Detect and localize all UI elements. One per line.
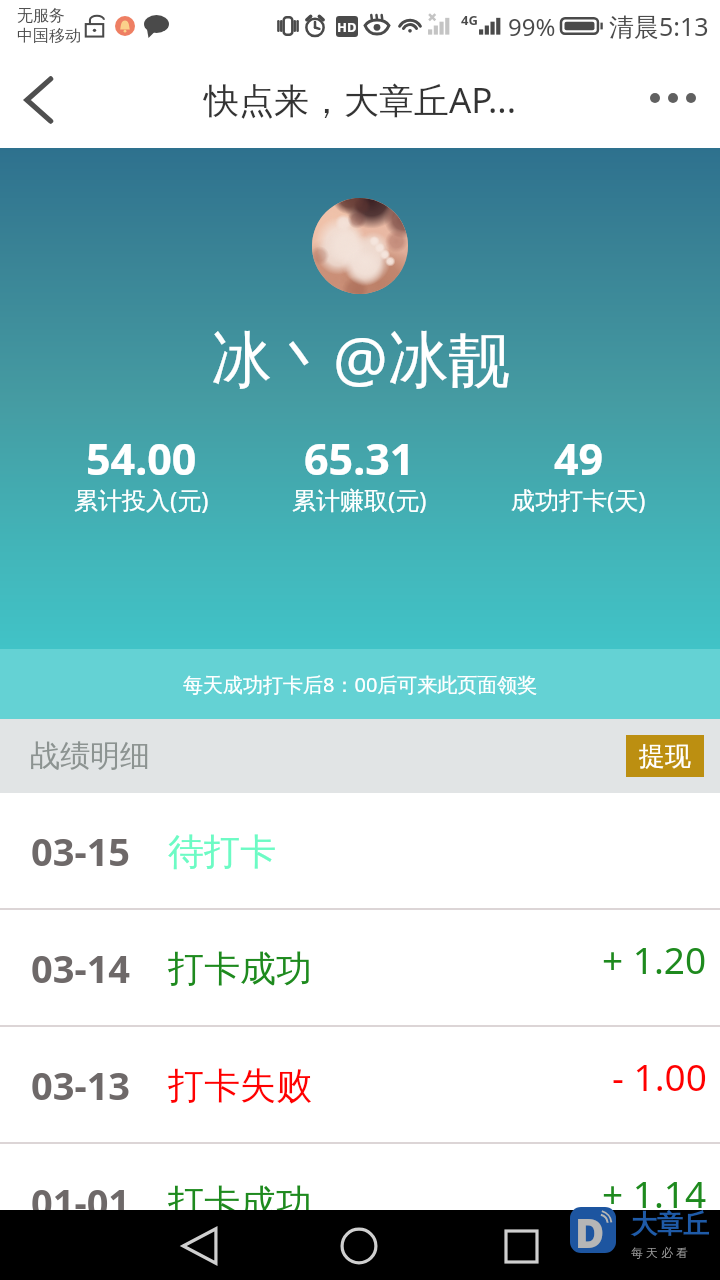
button[interactable]: Home	[324, 1211, 394, 1280]
staticText: 65.31	[304, 429, 415, 488]
staticText: 03-15	[31, 825, 131, 877]
staticText: 快点来，大章丘AP...	[204, 76, 517, 124]
staticText: 01-01	[31, 1176, 131, 1228]
staticText: HD	[337, 18, 357, 36]
staticText: 大章丘	[631, 1208, 709, 1241]
staticText: 99%	[508, 10, 556, 43]
staticText: - 1.00	[612, 1051, 707, 1101]
staticText: 03-13	[31, 1059, 131, 1111]
staticText: 每 天 必 看	[631, 1244, 689, 1260]
staticText: 打卡成功	[168, 1180, 312, 1225]
button[interactable]: Back	[3, 65, 73, 135]
button[interactable]: 提现	[626, 735, 704, 777]
staticText: 战绩明细	[30, 737, 150, 775]
staticText: + 1.14	[602, 1168, 707, 1218]
staticText: 03-14	[31, 942, 131, 994]
staticText: D	[575, 1207, 605, 1251]
button[interactable]: Recents	[486, 1211, 556, 1280]
button[interactable]: 03-13	[0, 1027, 720, 1142]
button[interactable]: 03-15	[0, 793, 720, 908]
staticText: 累计投入(元)	[74, 483, 209, 516]
staticText: 49	[554, 429, 604, 488]
staticText: 每天成功打卡后8：00后可来此页面领奖	[183, 671, 538, 698]
button[interactable]: 03-14	[0, 910, 720, 1025]
staticText: 中国移动	[17, 26, 81, 46]
button[interactable]: 01-01	[0, 1144, 720, 1259]
staticText: + 1.20	[602, 934, 707, 984]
button[interactable]: Back	[164, 1211, 234, 1280]
staticText: 成功打卡(天)	[511, 483, 646, 516]
staticText: 无服务	[17, 6, 65, 26]
staticText: 打卡失败	[168, 1063, 312, 1108]
staticText: 冰丶@冰靓	[211, 316, 510, 399]
staticText: 54.00	[86, 429, 197, 488]
staticText: 清晨5:13	[609, 9, 709, 43]
staticText: 累计赚取(元)	[292, 483, 427, 516]
button[interactable]: More options	[637, 62, 709, 134]
staticText: 提现	[639, 740, 691, 773]
staticText: 打卡成功	[168, 946, 312, 991]
staticText: 4G	[461, 11, 478, 29]
staticText: 待打卡	[168, 829, 276, 874]
